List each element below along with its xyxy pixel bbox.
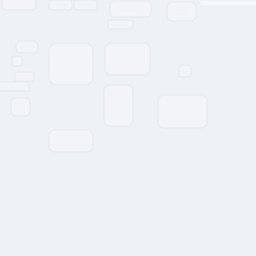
- button[interactable]: Filter: [108, 20, 133, 29]
- button[interactable]: Today: [49, 0, 72, 10]
- button[interactable]: Sync: [16, 41, 38, 53]
- button[interactable]: This Week: [74, 0, 97, 10]
- button[interactable]: Tile: [11, 98, 30, 116]
- button[interactable]: Tag: [15, 72, 34, 81]
- button[interactable]: Badge: [179, 65, 191, 77]
- button[interactable]: Select: [12, 56, 22, 66]
